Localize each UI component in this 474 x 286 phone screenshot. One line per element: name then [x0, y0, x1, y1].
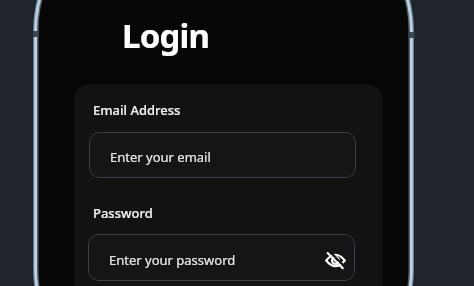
staticText: Login — [122, 13, 210, 58]
button[interactable]: Enter your password — [88, 234, 355, 281]
staticText: Enter your email — [110, 148, 211, 166]
button[interactable] — [325, 250, 346, 271]
staticText: Password — [93, 204, 153, 222]
button[interactable]: Enter your email — [89, 132, 356, 178]
staticText: Email Address — [93, 101, 181, 119]
staticText: Enter your password — [109, 251, 236, 269]
